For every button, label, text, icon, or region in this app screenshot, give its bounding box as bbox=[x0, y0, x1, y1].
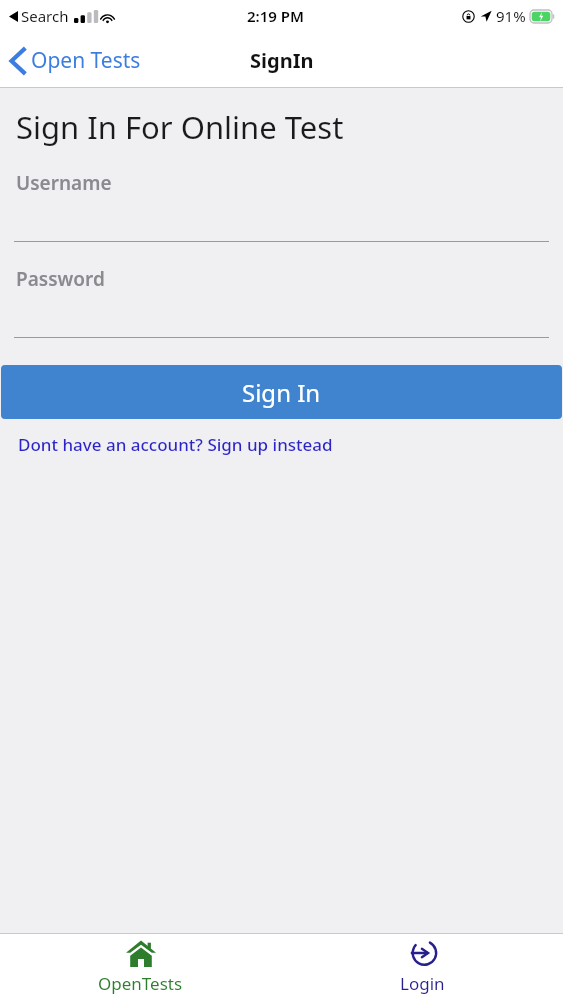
button[interactable]: OpenTests bbox=[0, 934, 281, 1000]
staticText: Dont have an account? Sign up instead bbox=[18, 433, 333, 456]
staticText: Username bbox=[16, 170, 112, 196]
staticText: Sign In For Online Test bbox=[16, 106, 344, 148]
staticText: 2:19 PM bbox=[247, 6, 304, 26]
button[interactable]: Sign In bbox=[1, 365, 562, 419]
button[interactable]: Login bbox=[281, 934, 563, 1000]
staticText: Password bbox=[16, 266, 105, 292]
staticText: 91% bbox=[496, 6, 526, 26]
staticText: Open Tests bbox=[31, 46, 141, 75]
staticText: OpenTests bbox=[98, 972, 183, 995]
staticText: Sign In bbox=[242, 376, 321, 409]
button[interactable]: Open Tests bbox=[0, 40, 149, 81]
staticText: SignIn bbox=[250, 47, 314, 74]
button[interactable]: Dont have an account? Sign up instead bbox=[0, 431, 345, 460]
staticText: Search bbox=[21, 6, 69, 26]
staticText: Login bbox=[400, 972, 445, 995]
